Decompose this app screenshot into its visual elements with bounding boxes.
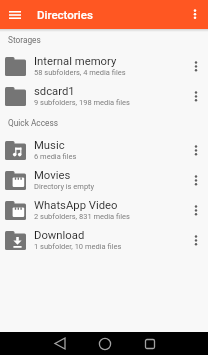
staticText: sdcard1: [34, 85, 75, 98]
staticText: Music: [34, 139, 65, 152]
staticText: 9 subfolders, 198 media files: [34, 98, 130, 107]
button[interactable]: [184, 195, 208, 225]
button[interactable]: Download: [0, 225, 208, 255]
button[interactable]: [82, 332, 127, 355]
staticText: 58 subfolders, 4 media files: [34, 68, 126, 77]
staticText: Quick Access: [8, 118, 58, 128]
button[interactable]: [127, 332, 172, 355]
staticText: 1 subfolder, 10 media files: [34, 242, 122, 251]
staticText: 6 media files: [34, 152, 77, 161]
button[interactable]: WhatsApp Video: [0, 195, 208, 225]
button[interactable]: Movies: [0, 165, 208, 195]
staticText: Movies: [34, 169, 71, 182]
staticText: Directory is empty: [34, 182, 95, 191]
button[interactable]: [37, 332, 82, 355]
staticText: 2 subfolders, 831 media files: [34, 212, 130, 221]
button[interactable]: Music: [0, 135, 208, 165]
button[interactable]: [184, 135, 208, 165]
staticText: WhatsApp Video: [34, 199, 118, 212]
staticText: Storages: [8, 35, 41, 45]
button[interactable]: [182, 0, 208, 29]
staticText: Directories: [37, 8, 93, 21]
button[interactable]: [184, 165, 208, 195]
staticText: Download: [34, 229, 85, 242]
staticText: Internal memory: [34, 55, 117, 68]
button[interactable]: [184, 81, 208, 111]
button[interactable]: Internal memory: [0, 51, 208, 81]
button[interactable]: sdcard1: [0, 81, 208, 111]
button[interactable]: [0, 0, 30, 29]
button[interactable]: [184, 225, 208, 255]
button[interactable]: [184, 51, 208, 81]
